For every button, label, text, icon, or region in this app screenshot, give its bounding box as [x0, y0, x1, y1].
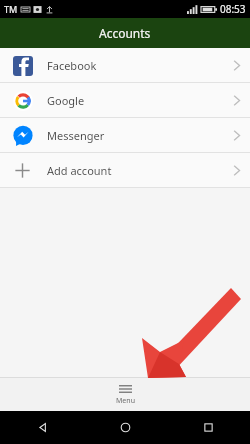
- staticText: Menu: [116, 396, 135, 406]
- button[interactable]: Back: [0, 411, 84, 444]
- staticText: Messenger: [47, 128, 105, 143]
- staticText: Add account: [47, 163, 112, 178]
- button[interactable]: Google: [0, 83, 250, 117]
- staticText: Google: [47, 93, 85, 108]
- button[interactable]: Recents: [167, 411, 250, 444]
- button[interactable]: Home: [84, 411, 167, 444]
- button[interactable]: Menu: [94, 381, 157, 409]
- button[interactable]: Messenger: [0, 118, 250, 152]
- button[interactable]: Add account: [0, 153, 250, 187]
- staticText: Facebook: [47, 58, 97, 73]
- staticText: 08:53: [220, 2, 246, 16]
- staticText: Accounts: [99, 25, 151, 41]
- button[interactable]: Facebook: [0, 48, 250, 82]
- staticText: TM: [4, 3, 18, 15]
